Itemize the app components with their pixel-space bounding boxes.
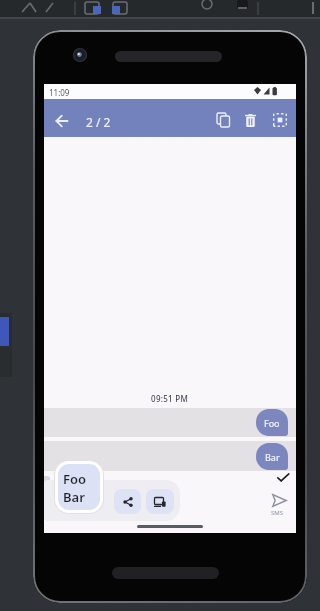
button[interactable]: [211, 108, 235, 132]
staticText: Foo: [264, 417, 280, 429]
button[interactable]: Bar: [256, 443, 288, 470]
button[interactable]: [268, 108, 292, 132]
button[interactable]: [239, 108, 261, 132]
button[interactable]: [146, 489, 174, 514]
button[interactable]: [50, 109, 74, 133]
button[interactable]: SMS: [266, 489, 294, 521]
staticText: Bar: [265, 451, 280, 463]
staticText: 09:51 PM: [151, 393, 189, 404]
staticText: 11:09: [49, 87, 70, 98]
staticText: 2 / 2: [86, 114, 111, 130]
button[interactable]: Foo: [256, 409, 288, 436]
button[interactable]: [114, 489, 141, 514]
staticText: Foo: [63, 470, 87, 488]
staticText: Bar: [63, 488, 85, 506]
button[interactable]: Foo: [55, 461, 103, 513]
staticText: SMS: [271, 509, 284, 517]
